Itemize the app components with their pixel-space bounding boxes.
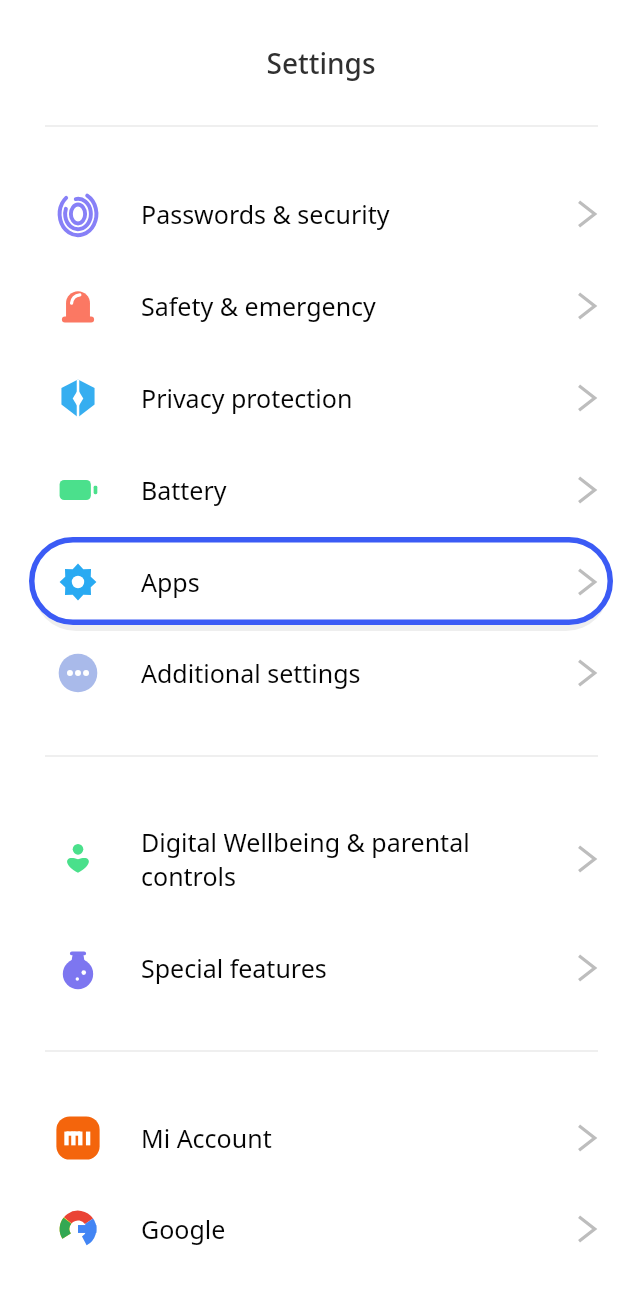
- staticText: Privacy protection: [141, 381, 353, 415]
- staticText: Settings: [266, 44, 376, 82]
- button[interactable]: Special features: [0, 922, 642, 1013]
- button[interactable]: Apps: [0, 536, 642, 627]
- button[interactable]: Safety & emergency: [0, 260, 642, 351]
- button[interactable]: Google: [0, 1183, 642, 1274]
- button[interactable]: Mi Account: [0, 1092, 642, 1183]
- staticText: Additional settings: [141, 656, 361, 690]
- button[interactable]: Battery: [0, 444, 642, 535]
- staticText: Digital Wellbeing & parental controls: [141, 825, 470, 893]
- button[interactable]: Additional settings: [0, 627, 642, 718]
- staticText: Safety & emergency: [141, 289, 376, 323]
- staticText: Apps: [141, 565, 200, 599]
- button[interactable]: Passwords & security: [0, 168, 642, 259]
- button[interactable]: Privacy protection: [0, 352, 642, 443]
- staticText: Passwords & security: [141, 197, 390, 231]
- staticText: Special features: [141, 951, 327, 985]
- staticText: Google: [141, 1212, 226, 1246]
- button[interactable]: Digital Wellbeing & parental controls: [0, 813, 642, 904]
- staticText: Mi Account: [141, 1121, 272, 1155]
- staticText: Battery: [141, 473, 227, 507]
